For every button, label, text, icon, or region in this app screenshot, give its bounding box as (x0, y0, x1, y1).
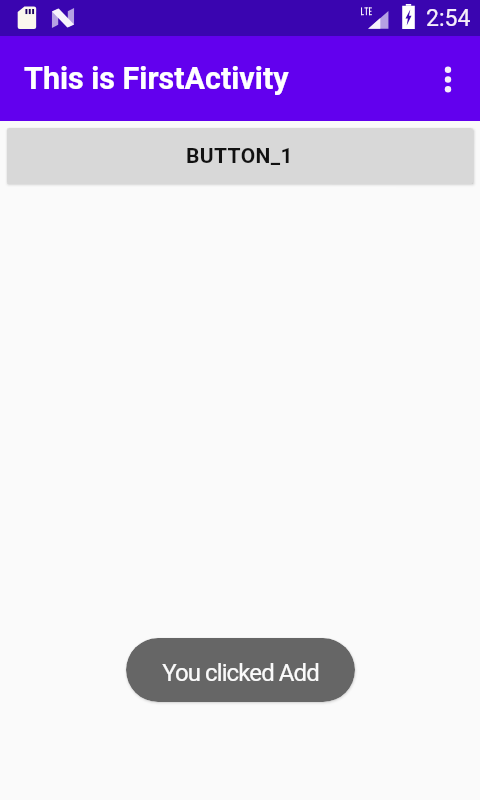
staticText: 2:54 (426, 5, 471, 32)
staticText: BUTTON_1 (186, 144, 294, 169)
staticText: This is FirstActivity (24, 61, 289, 97)
button[interactable]: More options (424, 55, 472, 103)
button[interactable]: BUTTON_1 (7, 128, 473, 184)
staticText: You clicked Add (162, 659, 319, 687)
